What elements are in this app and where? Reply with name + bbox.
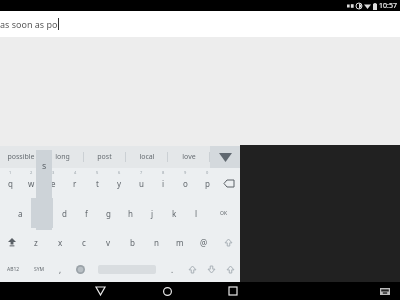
staticText: , (59, 264, 62, 275)
staticText: i (162, 178, 165, 189)
staticText: @ (200, 237, 208, 248)
staticText: 5 (96, 170, 99, 175)
button[interactable]: n (144, 228, 168, 256)
staticText: 10:57 (379, 1, 397, 11)
staticText: SYM (34, 266, 45, 273)
button[interactable]: 7 (130, 168, 152, 198)
button[interactable]: possible (0, 146, 41, 168)
button[interactable]: post (84, 146, 125, 168)
staticText: o (183, 178, 188, 189)
staticText: local (139, 152, 155, 162)
button[interactable]: . (162, 256, 183, 282)
staticText: 4 (74, 170, 77, 175)
button[interactable]: Change language (70, 256, 91, 282)
staticText: p (205, 178, 210, 189)
button[interactable]: j (141, 198, 163, 228)
staticText: post (97, 152, 112, 162)
button[interactable]: Emoji (221, 256, 240, 282)
button[interactable]: x (48, 228, 72, 256)
staticText: AB12 (7, 266, 20, 273)
staticText: OK (220, 210, 228, 217)
staticText: v (106, 237, 111, 248)
staticText: t (96, 178, 99, 189)
button[interactable]: 0 (196, 168, 218, 198)
button[interactable]: long (42, 146, 83, 168)
staticText: possible (7, 152, 35, 162)
staticText: as soon as po (0, 18, 58, 30)
button[interactable]: 4 (64, 168, 86, 198)
staticText: m (176, 237, 184, 248)
staticText: 7 (140, 170, 143, 175)
button[interactable]: 2 (21, 168, 42, 198)
button[interactable]: 9 (174, 168, 196, 198)
button[interactable]: OK (207, 198, 240, 228)
button[interactable]: Shift (0, 228, 24, 256)
button[interactable]: g (97, 198, 119, 228)
staticText: n (154, 237, 159, 248)
button[interactable]: c (72, 228, 96, 256)
button[interactable]: 3 (42, 168, 64, 198)
button[interactable]: l (185, 198, 207, 228)
button[interactable]: love (168, 146, 209, 168)
button[interactable]: f (75, 198, 97, 228)
staticText: 2 (30, 170, 33, 175)
staticText: k (172, 208, 177, 219)
staticText: l (195, 208, 198, 219)
staticText: . (171, 264, 174, 275)
button[interactable]: b (120, 228, 144, 256)
button[interactable]: 1 (0, 168, 21, 198)
staticText: 8 (162, 170, 165, 175)
button[interactable]: 8 (152, 168, 174, 198)
button[interactable]: Back (67, 282, 134, 300)
button[interactable]: z (24, 228, 48, 256)
staticText: q (8, 178, 13, 189)
button[interactable]: Down (202, 256, 221, 282)
button[interactable]: k (163, 198, 185, 228)
staticText: g (106, 208, 111, 219)
button[interactable]: SYM (27, 256, 51, 282)
staticText: j (151, 208, 154, 219)
button[interactable]: as soon as po (0, 11, 400, 37)
button[interactable]: 6 (108, 168, 130, 198)
staticText: y (117, 178, 122, 189)
staticText: long (55, 152, 70, 162)
button[interactable]: Shift (216, 228, 240, 256)
button[interactable]: m (168, 228, 192, 256)
staticText: 6 (118, 170, 121, 175)
button[interactable]: Keyboard (372, 282, 398, 300)
button[interactable]: a (10, 198, 31, 228)
button[interactable]: v (96, 228, 120, 256)
staticText: 9 (184, 170, 187, 175)
button[interactable]: local (126, 146, 167, 168)
staticText: d (62, 208, 67, 219)
staticText: 0 (206, 170, 209, 175)
staticText: e (51, 178, 56, 189)
staticText: a (18, 208, 23, 219)
staticText: 1 (9, 170, 12, 175)
staticText: w (28, 178, 35, 189)
staticText: b (130, 237, 135, 248)
button[interactable]: h (119, 198, 141, 228)
button[interactable]: @ (192, 228, 216, 256)
button[interactable]: AB12 (0, 256, 27, 282)
staticText: f (85, 208, 88, 219)
button[interactable]: , (51, 256, 70, 282)
staticText: 3 (52, 170, 55, 175)
staticText: h (128, 208, 133, 219)
staticText: s (42, 159, 47, 171)
staticText: x (58, 237, 63, 248)
button[interactable]: More suggestions (210, 146, 240, 168)
button[interactable]: Backspace (218, 168, 240, 198)
staticText: u (139, 178, 144, 189)
button[interactable]: Recent apps (200, 282, 266, 300)
staticText: c (82, 237, 86, 248)
staticText: r (73, 178, 77, 189)
button[interactable]: Up (183, 256, 202, 282)
button[interactable]: Home (134, 282, 200, 300)
staticText: z (34, 237, 38, 248)
button[interactable]: 5 (86, 168, 108, 198)
button[interactable]: d (53, 198, 75, 228)
